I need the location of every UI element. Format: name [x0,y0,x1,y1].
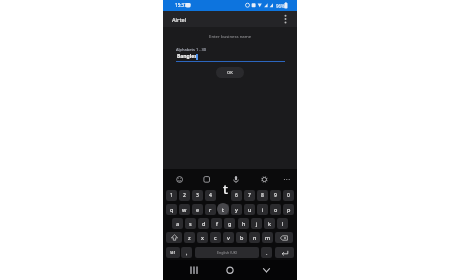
button[interactable]: 1 [166,190,177,201]
staticText: English (UK) [217,250,238,255]
button[interactable]: Airtel [163,11,297,27]
button[interactable]: n [249,232,260,243]
staticText: d [202,220,206,227]
button[interactable] [275,232,293,243]
button[interactable]: s [185,218,196,229]
button[interactable]: , [181,247,192,258]
button[interactable]: c [210,232,221,243]
button[interactable]: r [205,204,216,215]
staticText: t [223,180,228,198]
button[interactable]: 3 [192,190,203,201]
button[interactable] [163,260,207,280]
staticText: i [262,206,264,213]
button[interactable]: m [262,232,273,243]
staticText: Alphabets 1 - 30 [176,47,207,52]
button[interactable]: a [172,218,183,229]
staticText: o [274,206,278,213]
staticText: 6 [235,192,238,199]
staticText: . [266,249,268,256]
staticText: 8 [261,192,264,199]
button[interactable]: z [184,232,195,243]
staticText: Bangles [177,53,197,60]
staticText: g [228,220,232,227]
staticText: OK [227,70,233,75]
staticText: 2 [183,192,186,199]
button[interactable] [252,260,297,280]
staticText: c [214,234,217,241]
staticText: x [201,234,204,241]
staticText: 0 [287,192,290,199]
button[interactable]: . [261,247,272,258]
staticText: !#1 [170,250,176,255]
staticText: e [196,206,200,213]
button[interactable] [275,247,294,258]
button[interactable]: f [211,218,222,229]
staticText: r [209,206,212,213]
staticText: u [248,206,252,213]
button[interactable]: i [257,204,268,215]
staticText: b [240,234,244,241]
staticText: f [216,220,218,227]
button[interactable]: 0 [283,190,294,201]
button[interactable]: x [197,232,208,243]
button[interactable]: 6 [231,190,242,201]
button[interactable]: d [198,218,209,229]
staticText: v [227,234,230,241]
staticText: 1 [170,192,173,199]
staticText: k [268,220,271,227]
button[interactable]: u [244,204,255,215]
staticText: 15:37 [175,2,187,8]
button[interactable] [207,260,252,280]
button[interactable]: k [264,218,275,229]
staticText: y [235,206,238,213]
button[interactable]: j [251,218,262,229]
button[interactable]: g [224,218,235,229]
staticText: t [222,206,224,213]
button[interactable]: h [238,218,249,229]
staticText: a [176,220,180,227]
staticText: m [265,234,271,241]
staticText: s [189,220,192,227]
staticText: 7 [248,192,251,199]
staticText: h [242,220,246,227]
staticText: z [188,234,191,241]
staticText: Airtel [172,16,187,23]
button[interactable]: 8 [257,190,268,201]
button[interactable] [166,232,182,243]
button[interactable]: v [223,232,234,243]
staticText: Enter business name [209,33,252,39]
button[interactable]: w [179,204,190,215]
button[interactable]: l [277,218,288,229]
staticText: 4 [209,192,212,199]
staticText: 96% [276,3,285,9]
button[interactable]: b [236,232,247,243]
staticText: n [253,234,257,241]
staticText: w [182,206,187,213]
button[interactable]: 4 [205,190,216,201]
button[interactable]: e [192,204,203,215]
staticText: 3 [196,192,199,199]
button[interactable]: English (UK) [195,247,259,258]
button[interactable]: 9 [270,190,281,201]
staticText: q [170,206,174,213]
button[interactable]: 7 [244,190,255,201]
staticText: l [282,220,284,227]
button[interactable] [163,173,297,186]
button[interactable]: y [231,204,242,215]
button[interactable]: 2 [179,190,190,201]
staticText: p [287,206,291,213]
button[interactable]: q [166,204,177,215]
button[interactable] [218,204,229,215]
button[interactable]: o [270,204,281,215]
staticText: 9 [274,192,277,199]
button[interactable]: p [283,204,294,215]
button[interactable]: OK [216,67,244,78]
button[interactable]: !#1 [166,247,180,258]
staticText: , [186,249,188,256]
staticText: j [256,220,258,227]
